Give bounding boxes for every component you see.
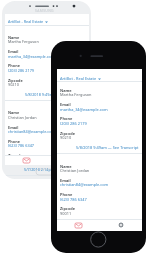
- button[interactable]: Settings: [99, 219, 142, 231]
- button[interactable]: martha_34@example.com: [8, 54, 55, 59]
- button[interactable]: Christian Jordan: [8, 115, 37, 120]
- button[interactable]: Phone: [8, 63, 20, 68]
- staticText: 90210: [60, 135, 72, 140]
- staticText: Martha Ferguson: [8, 39, 39, 44]
- staticText: Zipcode: [8, 153, 23, 158]
- button[interactable]: (203) 286 2179: [60, 121, 87, 126]
- staticText: Zipcode: [8, 78, 23, 83]
- button[interactable]: Martha Ferguson: [8, 39, 39, 44]
- staticText: 5/7/2018 2:14pm — See Transcript: [24, 167, 86, 172]
- staticText: Phone: [60, 192, 73, 197]
- button[interactable]: 90210: [8, 82, 19, 87]
- button[interactable]: Name: [60, 164, 72, 169]
- staticText: Phone: [8, 139, 20, 144]
- button[interactable]: Settings: [47, 155, 89, 165]
- staticText: Phone: [8, 63, 20, 68]
- staticText: (623) 786 6347: [60, 197, 87, 202]
- button[interactable]: Zipcode: [60, 206, 76, 211]
- button[interactable]: Name: [8, 35, 20, 40]
- button[interactable]: christian84@example.com: [8, 129, 56, 134]
- staticText: Email: [8, 49, 19, 54]
- button[interactable]: 90210: [60, 135, 72, 140]
- button[interactable]: 5/7/2018 2:14pm — See Transcript: [60, 221, 139, 226]
- button[interactable]: Phone: [60, 192, 73, 197]
- staticText: 90210: [8, 82, 19, 87]
- staticText: Phone: [60, 116, 73, 121]
- staticText: christian84@example.com: [60, 182, 109, 187]
- button[interactable]: Christian Jordan: [60, 168, 90, 173]
- staticText: martha_34@example.com: [60, 107, 108, 112]
- staticText: Name: [60, 88, 72, 93]
- button[interactable]: Zipcode: [60, 131, 76, 136]
- staticText: martha_34@example.com: [8, 54, 55, 59]
- button[interactable]: 5/7/2018 2:14pm — See Transcript: [8, 167, 86, 172]
- staticText: Martha Ferguson: [60, 92, 92, 97]
- button[interactable]: Email: [60, 102, 71, 107]
- button[interactable]: Phone: [8, 139, 20, 144]
- button[interactable]: Name: [60, 88, 72, 93]
- button[interactable]: Messages: [5, 155, 47, 165]
- button[interactable]: Name: [8, 110, 20, 115]
- button[interactable]: (623) 786 6347: [60, 197, 87, 202]
- staticText: ArtiBot - Real Estate: [8, 19, 44, 24]
- button[interactable]: christian84@example.com: [60, 182, 109, 187]
- staticText: 5/8/2018 9:49am — See Transcript: [25, 92, 86, 97]
- button[interactable]: Zipcode: [8, 153, 23, 158]
- button[interactable]: (623) 786 6347: [8, 143, 34, 148]
- staticText: Name: [8, 110, 20, 115]
- staticText: (203) 286 2179: [8, 68, 34, 73]
- staticText: Christian Jordan: [60, 168, 90, 173]
- staticText: 5/8/2018 9:49am — See Transcript: [76, 145, 139, 150]
- button[interactable]: Martha Ferguson: [60, 92, 92, 97]
- button[interactable]: 5/8/2018 9:49am — See Transcript: [60, 145, 139, 150]
- button[interactable]: Email: [8, 125, 19, 130]
- button[interactable]: 90011: [60, 211, 72, 216]
- button[interactable]: (203) 286 2179: [8, 68, 34, 73]
- staticText: Zipcode: [60, 206, 76, 211]
- staticText: Name: [8, 35, 20, 40]
- button[interactable]: Zipcode: [8, 78, 23, 83]
- staticText: ArtiBot - Real Estate: [60, 76, 97, 81]
- staticText: (623) 786 6347: [8, 143, 34, 148]
- button[interactable]: ArtiBot - Real Estate: [5, 19, 89, 24]
- staticText: Email: [60, 102, 71, 107]
- staticText: 5/7/2018 2:14pm — See Transcript: [76, 221, 139, 226]
- button[interactable]: 5/8/2018 9:49am — See Transcript: [8, 92, 86, 97]
- button[interactable]: Messages: [57, 219, 99, 231]
- staticText: Christian Jordan: [8, 115, 37, 120]
- staticText: Email: [8, 125, 19, 130]
- button[interactable]: ArtiBot - Real Estate: [57, 76, 142, 81]
- button[interactable]: Phone: [60, 116, 73, 121]
- button[interactable]: martha_34@example.com: [60, 107, 108, 112]
- staticText: Email: [60, 178, 71, 183]
- staticText: (203) 286 2179: [60, 121, 87, 126]
- staticText: Zipcode: [60, 131, 76, 136]
- staticText: SAMSUNG: [35, 8, 54, 13]
- staticText: 90011: [60, 211, 72, 216]
- button[interactable]: Email: [60, 178, 71, 183]
- staticText: christian84@example.com: [8, 129, 56, 134]
- staticText: Name: [60, 164, 72, 169]
- button[interactable]: Email: [8, 49, 19, 54]
